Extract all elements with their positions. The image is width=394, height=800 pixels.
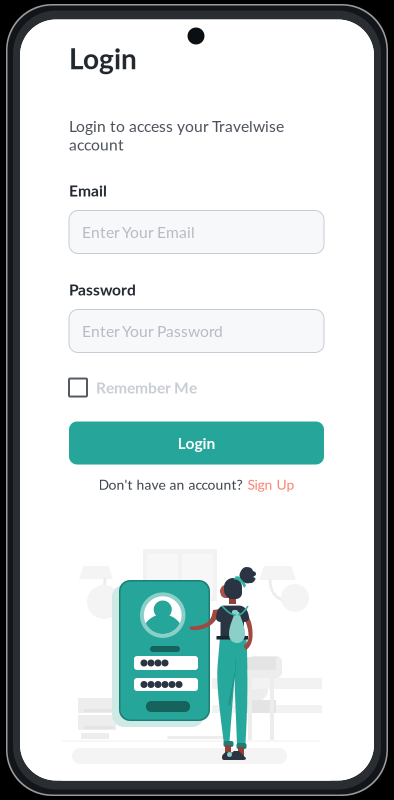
staticText: Login xyxy=(69,42,137,75)
staticText: Enter Your Email xyxy=(82,223,195,241)
staticText: Sign Up xyxy=(247,476,294,493)
staticText: Password xyxy=(69,280,136,299)
button[interactable]: Enter Your Password xyxy=(69,309,324,352)
staticText: Enter Your Password xyxy=(82,322,223,340)
button[interactable]: Sign Up xyxy=(247,476,294,493)
staticText: Don't have an account? xyxy=(98,476,242,493)
staticText: Remember Me xyxy=(96,378,197,397)
staticText: Login to access your Travelwise account xyxy=(69,116,284,154)
staticText: Email xyxy=(69,181,107,200)
button[interactable]: Enter Your Email xyxy=(69,210,324,253)
button[interactable]: Remember Me xyxy=(69,377,249,397)
button[interactable]: Login xyxy=(69,421,324,464)
staticText: Login xyxy=(177,434,215,452)
